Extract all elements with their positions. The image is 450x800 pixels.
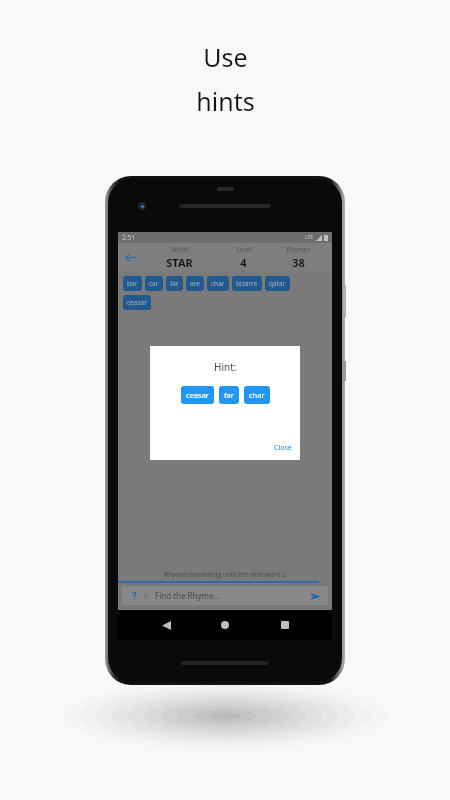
button[interactable]: car — [145, 276, 163, 291]
staticText: far — [224, 390, 234, 400]
staticText: hints — [196, 84, 255, 118]
staticText: char — [249, 390, 265, 400]
button[interactable]: qatar — [265, 276, 290, 291]
button[interactable]: far — [219, 386, 239, 404]
button[interactable]: Hint — [127, 589, 141, 603]
staticText: Level — [236, 245, 252, 254]
staticText: Find the Rhyme... — [155, 590, 307, 601]
button[interactable]: are — [186, 276, 204, 291]
button[interactable]: Recent apps — [273, 613, 297, 637]
staticText: Rhymes remaining until the next word 2 — [118, 570, 332, 579]
staticText: char — [211, 279, 225, 288]
staticText: 0 — [144, 592, 148, 600]
staticText: 2:51 — [122, 233, 135, 242]
staticText: Close — [274, 443, 292, 453]
button[interactable]: bizarre — [232, 276, 262, 291]
staticText: STAR — [166, 255, 193, 270]
staticText: bizarre — [236, 279, 258, 288]
staticText: qatar — [269, 279, 286, 288]
button[interactable]: Home — [213, 613, 237, 637]
staticText: 4 — [240, 255, 247, 270]
staticText: Use — [203, 40, 248, 74]
button[interactable]: Send — [307, 588, 323, 604]
staticText: Hint: — [214, 360, 237, 374]
button[interactable]: bar — [123, 276, 142, 291]
staticText: bar — [127, 279, 138, 288]
staticText: far — [170, 279, 179, 288]
staticText: Word — [171, 245, 188, 254]
button[interactable]: char — [207, 276, 229, 291]
staticText: car — [149, 279, 159, 288]
button[interactable]: ceasar — [181, 386, 214, 404]
button[interactable]: Navigate up — [120, 247, 140, 267]
staticText: LTE — [305, 234, 314, 241]
button[interactable]: far — [166, 276, 183, 291]
button[interactable]: Close — [274, 443, 300, 460]
staticText: ceasar — [186, 390, 209, 400]
button[interactable]: char — [244, 386, 270, 404]
staticText: ? — [132, 589, 137, 603]
staticText: are — [190, 279, 200, 288]
staticText: 38 — [292, 255, 305, 270]
button[interactable]: Back — [154, 613, 178, 637]
button[interactable]: ceasar — [123, 295, 151, 310]
staticText: Rhymes — [286, 245, 311, 254]
staticText: ceasar — [127, 298, 147, 307]
